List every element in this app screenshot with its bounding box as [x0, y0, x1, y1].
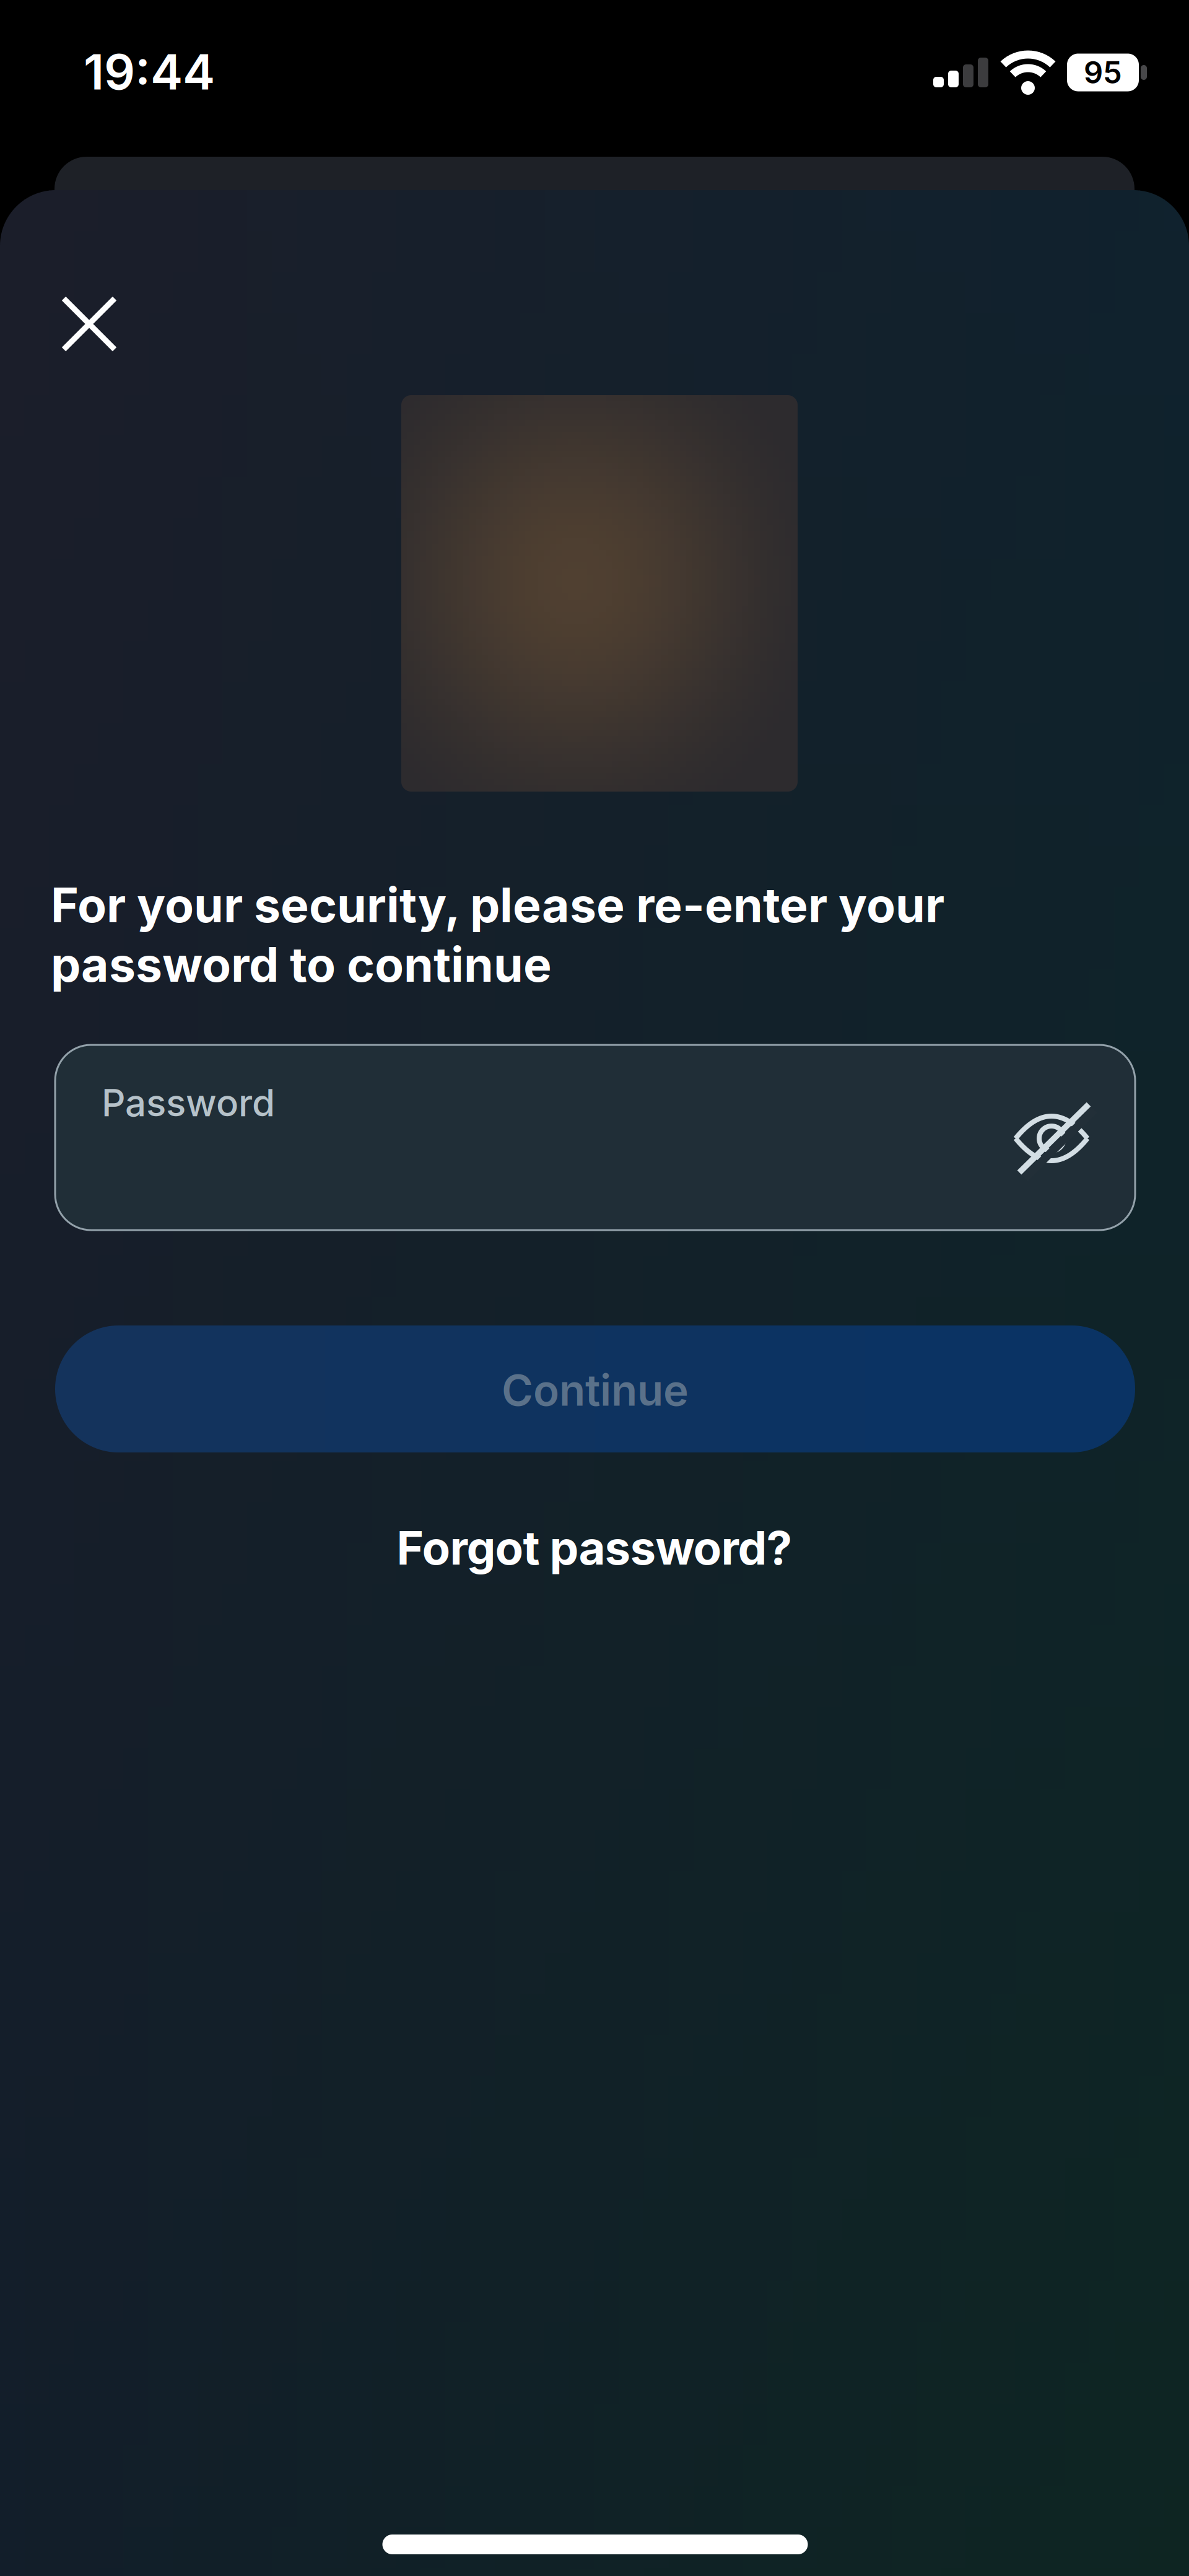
button[interactable]: Forgot password? [397, 1520, 792, 1576]
button[interactable]: Show password [1008, 1098, 1095, 1179]
button[interactable]: Continue [55, 1325, 1135, 1452]
staticText: 19:44 [84, 42, 215, 101]
staticText: Forgot password? [397, 1520, 792, 1576]
staticText: password to continue [51, 936, 552, 993]
staticText: Password [102, 1080, 275, 1125]
staticText: 95 [1084, 54, 1122, 91]
button[interactable]: Password [55, 1045, 1135, 1230]
staticText: For your security, please re-enter your [51, 876, 944, 934]
button[interactable]: Close [61, 295, 118, 352]
staticText: Continue [502, 1364, 689, 1416]
